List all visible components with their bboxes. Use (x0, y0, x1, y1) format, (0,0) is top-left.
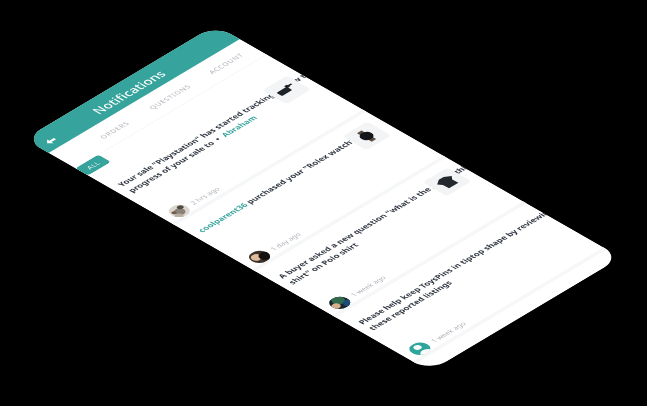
button[interactable]: ALL (75, 154, 111, 176)
staticText: QUESTIONS (146, 83, 193, 111)
button[interactable]: ACCOUNT (185, 39, 266, 87)
staticText: 2 hrs ago (187, 185, 222, 206)
staticText: progress of your sale to • (125, 133, 227, 194)
button[interactable]: coolparent36 (175, 111, 447, 271)
staticText: 1 week ago (348, 274, 388, 298)
staticText: Your sale "Playstation" has started trac… (115, 73, 308, 188)
staticText: ORDERS (97, 120, 132, 140)
staticText: A buyer asked a new question "what is th… (275, 165, 469, 280)
staticText: Abraham (218, 114, 260, 138)
staticText: purchased your "Rolex watch" (241, 137, 358, 206)
button[interactable]: QUESTIONS (129, 73, 211, 121)
button[interactable]: A buyer asked a new question "what is th… (255, 157, 527, 317)
staticText: 1 day ago (268, 231, 303, 252)
staticText: shirt" on Polo shirt (285, 241, 361, 286)
staticText: ALL (84, 160, 103, 171)
staticText: Please help keep ToysPins in tiptop shap… (355, 211, 549, 326)
staticText: these reported listings (366, 279, 455, 332)
button[interactable]: ORDERS (74, 106, 155, 154)
staticText: Notifications (87, 68, 170, 117)
staticText: coolparent36 (195, 201, 251, 234)
staticText: 1 week ago (428, 320, 468, 344)
button[interactable]: Please help keep ToysPins in tiptop shap… (335, 203, 607, 363)
staticText: ACCOUNT (206, 51, 246, 75)
button[interactable]: Back (36, 132, 66, 150)
button[interactable]: Your sale "Playstation" has started trac… (95, 65, 366, 226)
